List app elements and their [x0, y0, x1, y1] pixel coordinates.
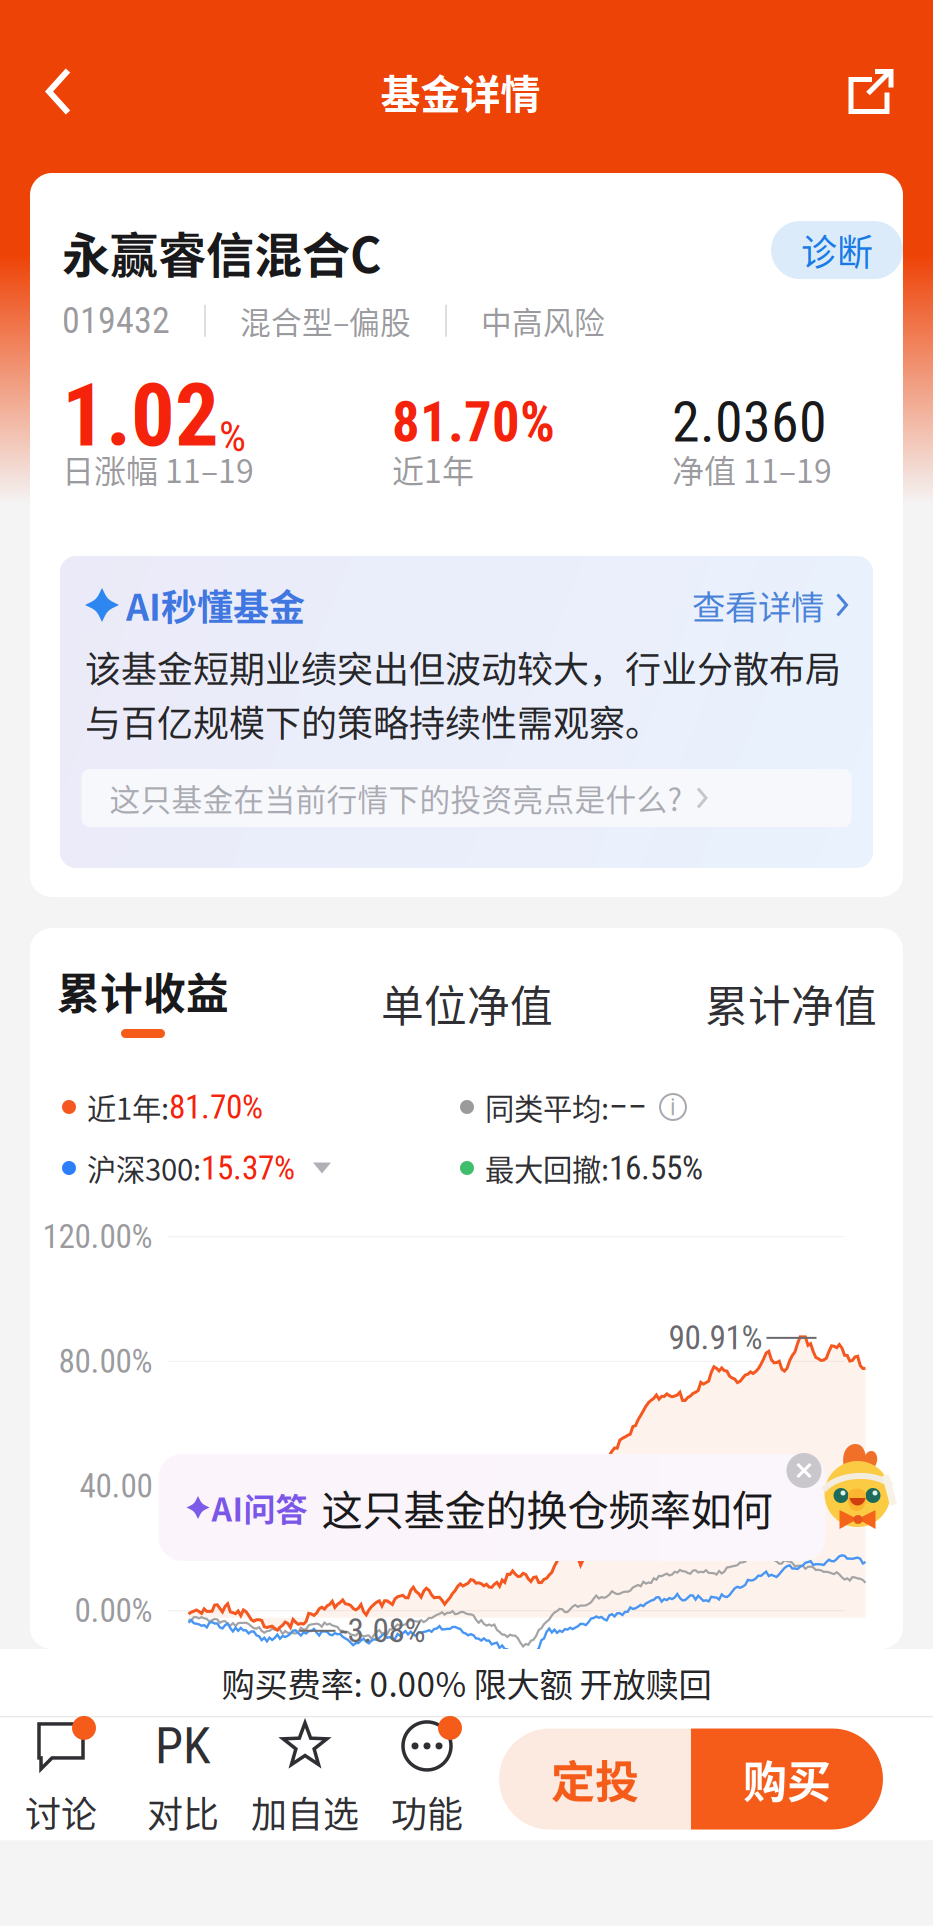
staticText: 0.00%: [74, 1591, 152, 1630]
staticText: 单位净值: [381, 973, 553, 1034]
staticText: 近1年: [392, 446, 474, 492]
staticText: 沪深300:: [87, 1147, 201, 1189]
button[interactable]: 这只基金在当前行情下的投资亮点是什么?: [81, 769, 851, 827]
button[interactable]: 分享: [823, 45, 933, 137]
staticText: 查看详情: [692, 581, 824, 629]
staticText: 40.00: [79, 1466, 152, 1506]
button[interactable]: 诊断: [771, 221, 903, 279]
staticText: -3.08%: [339, 1611, 425, 1650]
staticText: 019432: [62, 300, 170, 342]
staticText: 90.91%: [668, 1318, 762, 1357]
staticText: PK: [155, 1716, 211, 1776]
staticText: 定投: [551, 1747, 639, 1811]
button[interactable]: 购买: [691, 1728, 883, 1829]
staticText: 诊断: [801, 224, 873, 276]
staticText: 中高风险: [481, 298, 605, 343]
staticText: 1.02: [62, 365, 219, 467]
staticText: %: [219, 412, 246, 462]
staticText: 最大回撤:: [485, 1147, 609, 1189]
staticText: 功能: [391, 1786, 463, 1838]
button[interactable]: 返回: [0, 45, 98, 137]
button[interactable]: 功能: [366, 1720, 488, 1838]
staticText: 15.37%: [201, 1148, 295, 1188]
staticText: ––: [609, 1087, 647, 1127]
staticText: 16.55%: [609, 1148, 703, 1188]
button[interactable]: 单位净值: [381, 981, 553, 1025]
staticText: 累计净值: [705, 973, 877, 1034]
staticText: 累计收益: [57, 960, 229, 1022]
staticText: 日涨幅 11–19: [62, 446, 254, 492]
staticText: 净值 11–19: [672, 446, 832, 492]
staticText: 加自选: [251, 1786, 359, 1838]
staticText: AI问答: [211, 1484, 307, 1531]
staticText: 同类平均:: [485, 1086, 609, 1128]
button[interactable]: 查看详情: [692, 581, 848, 629]
staticText: 讨论: [25, 1786, 97, 1838]
staticText: 购买: [743, 1747, 831, 1811]
staticText: 该基金短期业绩突出但波动较大，行业分散布局: [85, 641, 841, 693]
staticText: 120.00%: [42, 1217, 152, 1256]
staticText: 2.0360: [672, 390, 827, 455]
staticText: 永赢睿信混合C: [62, 217, 381, 286]
button[interactable]: 累计收益: [57, 969, 229, 1038]
button[interactable]: 讨论: [0, 1720, 122, 1838]
staticText: 购买费率: 0.00% 限大额 开放赎回: [221, 1658, 711, 1707]
staticText: i: [670, 1093, 676, 1121]
staticText: 81.70%: [169, 1087, 263, 1127]
staticText: 基金详情: [380, 62, 540, 120]
staticText: 80.00%: [58, 1342, 152, 1381]
button[interactable]: AI问答: [158, 1454, 825, 1561]
staticText: AI秒懂基金: [126, 579, 305, 631]
button[interactable]: 累计净值: [705, 981, 877, 1025]
staticText: 对比: [147, 1786, 219, 1838]
staticText: 与百亿规模下的策略持续性需观察。: [85, 695, 661, 747]
staticText: 这只基金在当前行情下的投资亮点是什么?: [109, 776, 682, 820]
button[interactable]: 加自选: [244, 1720, 366, 1838]
staticText: 近1年:: [87, 1086, 169, 1128]
staticText: 这只基金的换仓频率如何: [321, 1478, 772, 1537]
button[interactable]: 定投: [499, 1728, 691, 1829]
button[interactable]: PK: [122, 1720, 244, 1838]
button[interactable]: 关闭: [786, 1453, 821, 1488]
staticText: 81.70%: [392, 390, 555, 454]
staticText: 混合型–偏股: [240, 298, 411, 343]
